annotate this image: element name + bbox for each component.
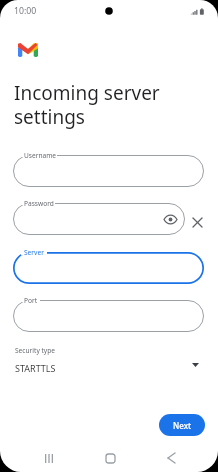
staticText: Port bbox=[24, 296, 38, 305]
button[interactable]: Next bbox=[159, 414, 205, 436]
staticText: STARTTLS bbox=[15, 362, 56, 374]
staticText: Password bbox=[24, 199, 54, 208]
button[interactable]: Home bbox=[98, 448, 122, 468]
button[interactable]: Back bbox=[159, 448, 183, 468]
staticText: Incoming server settings bbox=[14, 80, 160, 129]
button[interactable]: Recents bbox=[37, 448, 61, 468]
staticText: Next bbox=[173, 420, 192, 431]
staticText: Username bbox=[24, 151, 57, 160]
button[interactable] bbox=[13, 300, 204, 332]
staticText: Server bbox=[24, 248, 44, 257]
button[interactable]: Security type bbox=[0, 340, 218, 380]
staticText: Security type bbox=[15, 346, 55, 355]
button[interactable]: Show password bbox=[162, 211, 179, 228]
button[interactable] bbox=[13, 252, 204, 284]
button[interactable] bbox=[13, 203, 185, 235]
button[interactable] bbox=[13, 155, 204, 187]
button[interactable]: Clear bbox=[189, 214, 206, 231]
staticText: 10:00 bbox=[14, 5, 37, 17]
